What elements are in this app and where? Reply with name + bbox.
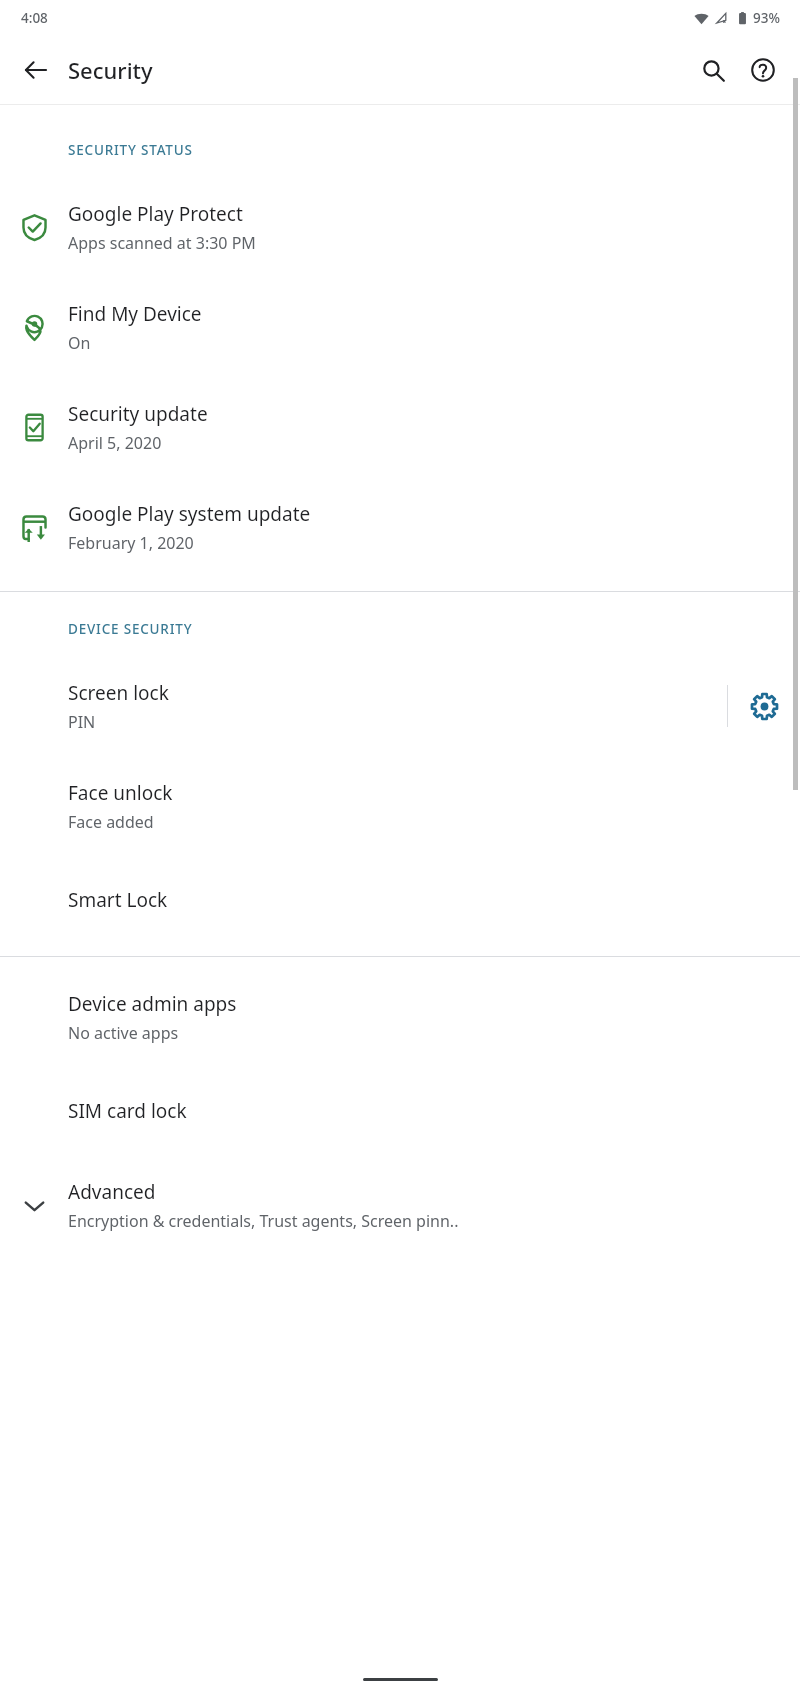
staticText: 4:08: [21, 9, 48, 27]
staticText: SIM card lock: [68, 1098, 187, 1124]
staticText: Google Play system update: [68, 501, 311, 527]
button[interactable]: Advanced: [0, 1155, 800, 1255]
button[interactable]: Google Play Protect: [0, 177, 800, 277]
staticText: Face unlock: [68, 780, 173, 806]
staticText: Encryption & credentials, Trust agents, …: [68, 1210, 459, 1232]
staticText: Device admin apps: [68, 991, 237, 1017]
staticText: DEVICE SECURITY: [68, 620, 193, 638]
button[interactable]: Search: [688, 45, 738, 95]
staticText: Screen lock: [68, 680, 169, 706]
button[interactable]: SIM card lock: [0, 1067, 800, 1155]
staticText: PIN: [68, 711, 96, 733]
staticText: Security update: [68, 401, 208, 427]
button[interactable]: Smart Lock: [0, 856, 800, 944]
button[interactable]: Face unlock: [0, 756, 800, 856]
staticText: Google Play Protect: [68, 201, 243, 227]
staticText: Face added: [68, 811, 154, 833]
button[interactable]: Screen lock settings: [728, 656, 800, 756]
button[interactable]: Find My Device: [0, 277, 800, 377]
button[interactable]: Screen lock: [0, 656, 727, 756]
staticText: Smart Lock: [68, 887, 168, 913]
staticText: 93%: [753, 9, 780, 27]
staticText: On: [68, 332, 91, 354]
staticText: Apps scanned at 3:30 PM: [68, 232, 256, 254]
button[interactable]: Google Play system update: [0, 477, 800, 577]
staticText: Advanced: [68, 1179, 156, 1205]
button[interactable]: Help: [738, 45, 788, 95]
staticText: Find My Device: [68, 301, 202, 327]
button[interactable]: Device admin apps: [0, 967, 800, 1067]
staticText: Security: [68, 55, 153, 85]
button[interactable]: Back: [8, 42, 64, 98]
staticText: No active apps: [68, 1022, 179, 1044]
staticText: April 5, 2020: [68, 432, 162, 454]
button[interactable]: Security update: [0, 377, 800, 477]
staticText: SECURITY STATUS: [68, 141, 193, 159]
staticText: February 1, 2020: [68, 532, 194, 554]
